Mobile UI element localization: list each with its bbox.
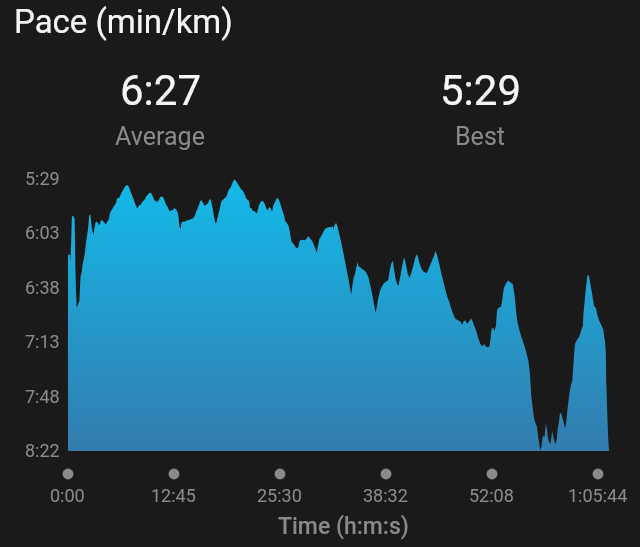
staticText: 6:38	[25, 277, 60, 298]
staticText: Pace (min/km)	[14, 2, 233, 41]
staticText: 38:32	[363, 485, 408, 506]
staticText: Time (h:m:s)	[278, 513, 409, 540]
staticText: 1:05:44	[568, 485, 628, 506]
button[interactable]: 6:27	[0, 58, 320, 162]
staticText: 8:22	[25, 440, 60, 461]
staticText: 7:13	[25, 331, 60, 352]
button[interactable]: Pace over time chart	[20, 168, 610, 468]
staticText: 6:27	[120, 66, 201, 115]
staticText: 12:45	[151, 485, 196, 506]
staticText: 6:03	[25, 222, 60, 243]
staticText: 5:29	[25, 168, 60, 189]
staticText: 52:08	[469, 485, 514, 506]
button[interactable]: Pace (min/km)	[6, 0, 241, 43]
staticText: Best	[455, 122, 505, 151]
button[interactable]: 5:29	[320, 58, 640, 162]
staticText: 7:48	[25, 386, 60, 407]
staticText: 5:29	[440, 66, 521, 115]
staticText: Average	[115, 122, 205, 151]
staticText: 25:30	[257, 485, 302, 506]
staticText: 0:00	[50, 485, 85, 506]
